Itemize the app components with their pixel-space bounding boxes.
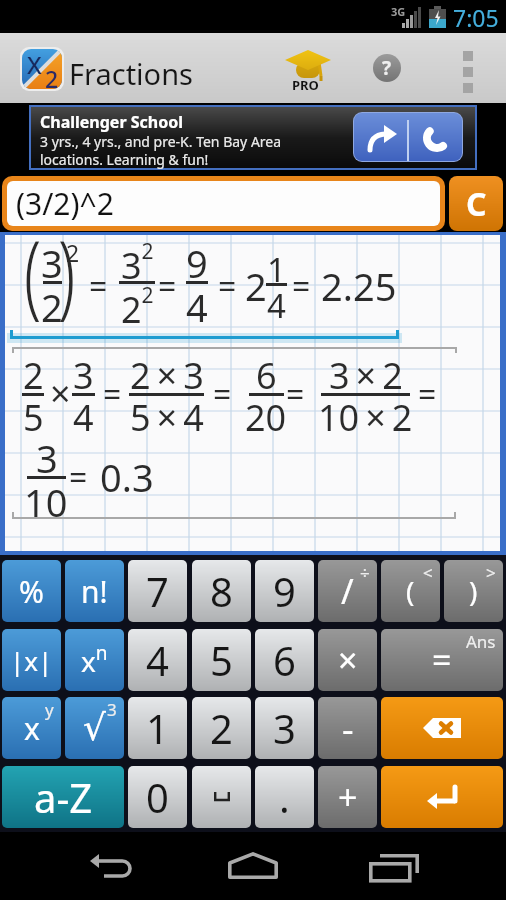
staticText: 32 — [121, 237, 154, 281]
button[interactable] — [192, 766, 251, 828]
button[interactable]: x — [2, 697, 61, 759]
button[interactable]: xn — [65, 629, 124, 691]
button[interactable]: 1 — [128, 697, 187, 759]
staticText: 3 — [273, 701, 296, 755]
button[interactable]: C — [449, 176, 503, 231]
staticText: Ans — [466, 630, 496, 653]
staticText: ( — [24, 210, 42, 334]
button[interactable] — [381, 697, 503, 759]
button[interactable] — [363, 844, 427, 888]
staticText: x — [24, 708, 40, 749]
staticText: 3 × 2 — [329, 351, 403, 393]
button[interactable]: 9 — [255, 560, 314, 622]
button[interactable]: . — [255, 766, 314, 828]
staticText: = — [69, 455, 88, 499]
staticText: ) — [58, 210, 76, 334]
staticText: 7:05 — [453, 2, 499, 33]
button[interactable] — [409, 113, 462, 161]
button[interactable]: 3 — [255, 697, 314, 759]
button[interactable]: (3/2)^2 — [7, 181, 440, 226]
button[interactable] — [455, 45, 481, 93]
button[interactable]: 6 — [255, 629, 314, 691]
staticText: √ — [83, 707, 106, 749]
staticText: 9 — [186, 237, 208, 281]
staticText: 2 — [210, 701, 233, 755]
button[interactable]: = — [381, 629, 503, 691]
button[interactable]: n! — [65, 560, 124, 622]
button[interactable]: √ — [65, 697, 124, 759]
staticText: 5 — [23, 393, 44, 435]
staticText: 10 × 2 — [318, 393, 413, 435]
staticText: 3 — [41, 237, 63, 281]
staticText: 3 — [107, 698, 117, 721]
staticText: 3 — [73, 351, 94, 393]
staticText: xn — [81, 640, 108, 681]
button[interactable]: 2 — [192, 697, 251, 759]
staticText: % — [19, 571, 44, 612]
staticText: ) — [469, 572, 478, 610]
staticText: 0 — [146, 770, 169, 824]
staticText: / — [341, 568, 354, 614]
staticText: 2.25 — [321, 260, 397, 312]
staticText: |x| — [10, 643, 53, 678]
staticText: ÷ — [360, 561, 370, 584]
staticText: C — [466, 182, 487, 226]
staticText: 9 — [273, 564, 296, 618]
staticText: 3 yrs., 4 yrs., and pre-K. Ten Bay Area — [40, 132, 282, 151]
button[interactable]: 8 — [192, 560, 251, 622]
staticText: - — [342, 704, 354, 753]
button[interactable]: % — [2, 560, 61, 622]
staticText: 4 — [73, 393, 94, 435]
button[interactable]: ( — [381, 560, 440, 622]
button[interactable]: 5 — [192, 629, 251, 691]
button[interactable] — [354, 113, 409, 161]
button[interactable]: X — [20, 47, 64, 91]
staticText: 6 — [273, 633, 296, 687]
staticText: = — [89, 264, 108, 308]
staticText: 8 — [210, 564, 233, 618]
staticText: 1 — [267, 247, 286, 283]
button[interactable]: ) — [444, 560, 503, 622]
button[interactable]: Challenger School — [31, 107, 475, 168]
button[interactable]: × — [318, 629, 377, 691]
staticText: y — [45, 698, 54, 721]
button[interactable] — [80, 844, 144, 888]
staticText: 4 — [186, 281, 208, 325]
button[interactable]: - — [318, 697, 377, 759]
staticText: > — [486, 561, 496, 584]
staticText: 7 — [146, 564, 169, 618]
staticText: × — [338, 637, 358, 683]
button[interactable]: |x| — [2, 629, 61, 691]
staticText: × — [50, 369, 71, 418]
staticText: = — [213, 372, 232, 416]
staticText: 1 — [146, 701, 169, 755]
staticText: 2 × 3 — [130, 351, 204, 393]
button[interactable]: + — [318, 766, 377, 828]
button[interactable]: / — [318, 560, 377, 622]
staticText: X — [27, 48, 42, 81]
button[interactable]: a-Z — [2, 766, 124, 828]
staticText: = — [218, 264, 237, 308]
staticText: . — [279, 770, 290, 824]
button[interactable]: 7 — [128, 560, 187, 622]
staticText: a-Z — [34, 770, 93, 824]
staticText: 2 — [245, 260, 267, 312]
button[interactable]: PRO — [285, 50, 331, 92]
staticText: 5 × 4 — [130, 393, 204, 435]
staticText: = — [432, 637, 452, 683]
staticText: = — [103, 372, 122, 416]
staticText: = — [292, 264, 311, 308]
button[interactable] — [381, 766, 503, 828]
staticText: 6 — [256, 351, 277, 393]
staticText: PRO — [292, 76, 319, 94]
staticText: ( — [406, 572, 415, 610]
button[interactable]: ? — [373, 54, 401, 82]
button[interactable]: 0 — [128, 766, 187, 828]
button[interactable] — [221, 844, 285, 888]
button[interactable]: 4 — [128, 629, 187, 691]
staticText: locations. Learning & fun! — [40, 150, 209, 169]
staticText: 3 — [36, 432, 58, 476]
staticText: n! — [81, 571, 108, 612]
staticText: 22 — [121, 281, 154, 325]
staticText: 2 — [66, 237, 80, 268]
